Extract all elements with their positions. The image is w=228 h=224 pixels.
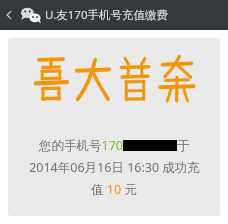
staticText: 于 — [177, 138, 190, 154]
other: WeChat — [20, 5, 42, 25]
staticText: 值 10 元 — [91, 181, 137, 198]
button[interactable]: Back — [0, 0, 18, 30]
staticText: 您的手机号170 — [39, 137, 123, 154]
staticText: U.友170手机号充值缴费 — [45, 7, 168, 23]
staticText: 2014年06月16日 16:30 成功充 — [29, 159, 200, 176]
